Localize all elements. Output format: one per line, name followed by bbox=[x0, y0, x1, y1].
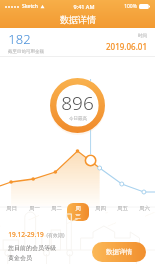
button[interactable]: 周一 bbox=[25, 203, 44, 214]
staticText: Sketch bbox=[22, 3, 38, 10]
button[interactable]: 周二 bbox=[47, 203, 66, 214]
staticText: (有效期) bbox=[46, 232, 65, 239]
staticText: 周二 bbox=[51, 205, 62, 212]
staticText: 截至目前可用金额 bbox=[8, 49, 44, 55]
staticText: 数据详情 bbox=[60, 14, 96, 25]
button[interactable]: 周六 bbox=[135, 203, 154, 214]
staticText: 您目前的会员等级 bbox=[8, 244, 56, 252]
staticText: 2019.06.01 bbox=[106, 41, 147, 52]
staticText: 19.12-29.19 bbox=[8, 230, 44, 239]
button[interactable]: 数据详情 bbox=[92, 242, 146, 262]
staticText: 周五 bbox=[117, 205, 128, 212]
button[interactable]: 周三 bbox=[67, 203, 89, 221]
staticText: 周六 bbox=[139, 205, 150, 212]
staticText: 时间 bbox=[138, 33, 147, 39]
staticText: 9:41 AM bbox=[73, 3, 95, 10]
staticText: 周三 bbox=[73, 205, 83, 219]
button[interactable]: 周五 bbox=[113, 203, 132, 214]
staticText: 182 bbox=[8, 30, 31, 48]
staticText: 100% bbox=[124, 3, 137, 10]
button[interactable]: 周四 bbox=[91, 203, 110, 214]
button[interactable]: 周日 bbox=[2, 203, 21, 214]
staticText: 周四 bbox=[95, 205, 106, 212]
staticText: 黄金会员 bbox=[8, 254, 32, 262]
staticText: 周日 bbox=[6, 205, 17, 212]
staticText: 周一 bbox=[29, 205, 40, 212]
staticText: 896 bbox=[61, 90, 94, 116]
staticText: 数据详情 bbox=[106, 248, 132, 256]
staticText: 今日最高 bbox=[69, 116, 87, 122]
